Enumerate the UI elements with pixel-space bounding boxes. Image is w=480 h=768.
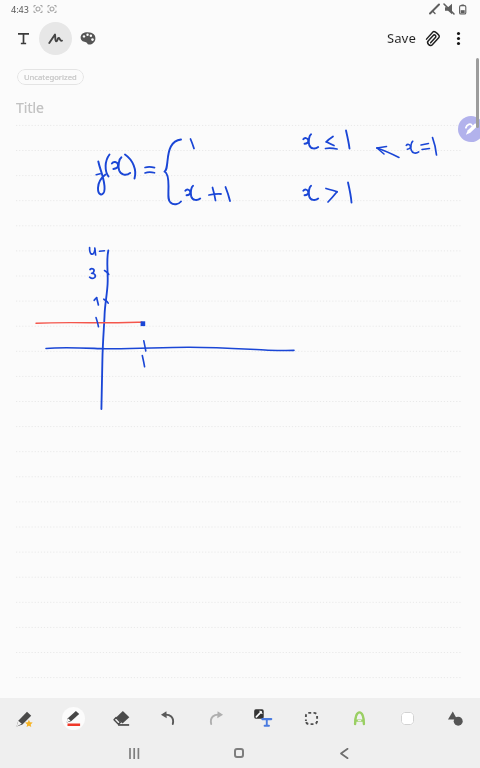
- button[interactable]: Pen tool: [458, 116, 480, 142]
- button[interactable]: Pen: [53, 698, 93, 738]
- button[interactable]: Convert to text: [243, 698, 283, 738]
- button[interactable]: Back: [327, 738, 361, 768]
- button[interactable]: Uncategorized: [24, 69, 77, 85]
- button[interactable]: More options: [443, 23, 473, 53]
- staticText: 4:43: [11, 3, 29, 15]
- button[interactable]: Title: [16, 98, 44, 117]
- button[interactable]: Shapes: [435, 698, 475, 738]
- button[interactable]: Handwriting mode: [39, 22, 72, 55]
- staticText: Uncategorized: [24, 72, 77, 82]
- button[interactable]: Recents: [117, 738, 151, 768]
- button[interactable]: Home: [222, 738, 256, 768]
- button[interactable]: Undo: [148, 698, 188, 738]
- button[interactable]: Save: [387, 29, 416, 47]
- button[interactable]: Eraser: [101, 698, 141, 738]
- button[interactable]: Background: [387, 698, 427, 738]
- button[interactable]: Pen colours: [74, 24, 102, 52]
- button[interactable]: Attach file: [417, 23, 447, 53]
- button[interactable]: Redo: [196, 698, 236, 738]
- button[interactable]: Highlight text: [339, 698, 379, 738]
- button[interactable]: Select: [291, 698, 331, 738]
- button[interactable]: Text mode: [8, 23, 39, 54]
- staticText: Save: [387, 29, 416, 47]
- button[interactable]: Favourite pen: [5, 698, 45, 738]
